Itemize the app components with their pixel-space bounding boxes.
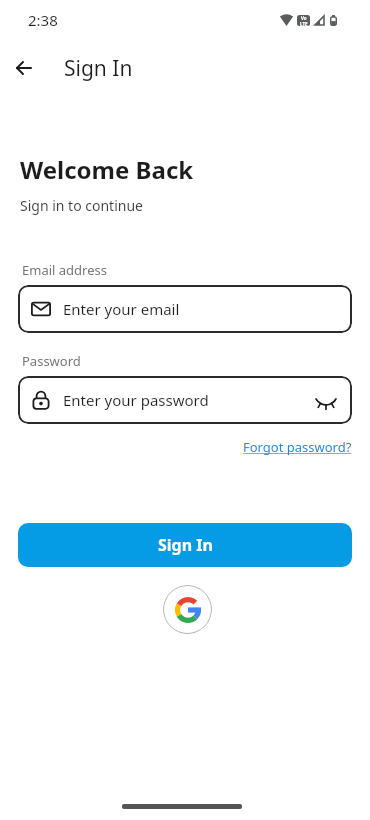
staticText: Vo (301, 15, 307, 21)
staticText: Enter your password (63, 390, 209, 410)
staticText: Welcome Back (20, 153, 194, 186)
button[interactable]: Enter your email (18, 285, 352, 333)
button[interactable] (163, 585, 212, 634)
button[interactable] (314, 388, 338, 412)
button[interactable]: Enter your password (18, 376, 352, 424)
staticText: 2:38 (28, 10, 58, 30)
staticText: Sign in to continue (20, 196, 143, 215)
staticText: Sign In (158, 534, 213, 556)
staticText: Password (22, 352, 81, 370)
staticText: LTE (300, 21, 308, 26)
staticText: Enter your email (63, 299, 180, 319)
staticText: Sign In (64, 54, 133, 83)
button[interactable]: Forgot password? (243, 438, 352, 456)
staticText: Email address (22, 261, 107, 279)
button[interactable] (0, 44, 48, 92)
button[interactable]: Sign In (18, 523, 352, 567)
